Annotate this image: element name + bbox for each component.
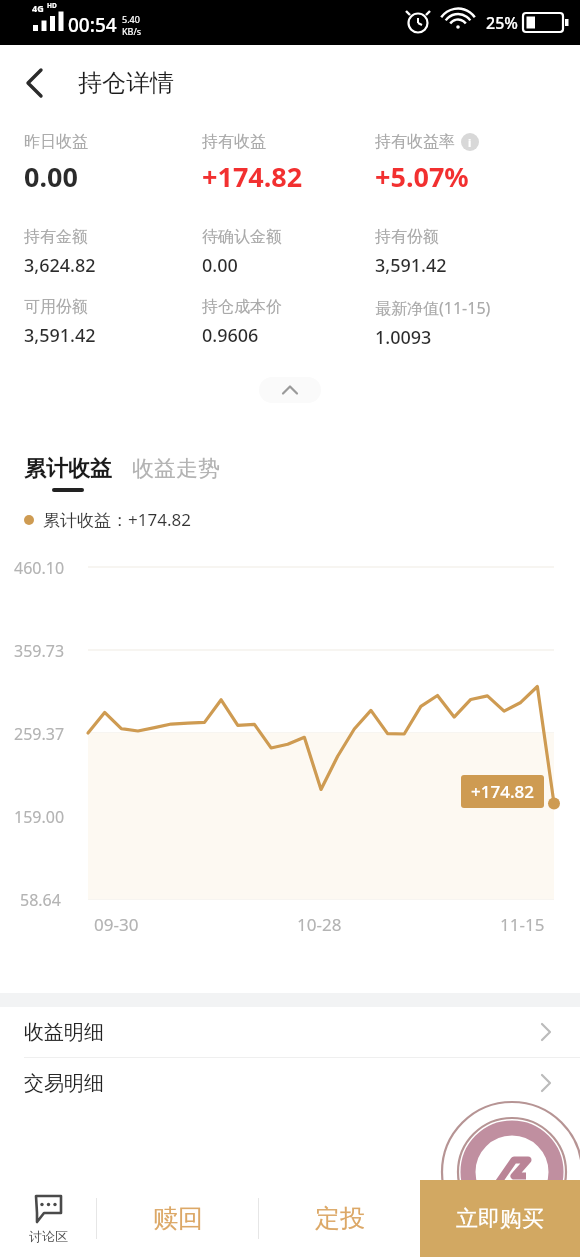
staticText: 0.00 [24,158,78,195]
staticText: 4G [32,2,44,14]
button[interactable]: Info [461,133,479,151]
staticText: +174.82 [471,780,534,803]
staticText: 持仓成本价 [202,297,282,317]
staticText: 10-28 [297,913,342,936]
staticText: 持有收益率 [375,132,455,152]
staticText: i [468,135,472,150]
staticText: 立即购买 [456,1205,544,1233]
staticText: 58.64 [20,889,61,911]
staticText: 持有金额 [24,227,88,247]
button[interactable]: 收益明细 [0,1007,580,1057]
staticText: 累计收益：+174.82 [43,508,191,531]
staticText: 11-15 [500,913,545,936]
staticText: 持有收益 [202,132,266,152]
button[interactable]: 定投 [259,1180,420,1257]
staticText: 持有份额 [375,227,439,247]
staticText: 3,591.42 [375,253,447,278]
staticText: 交易明细 [24,1071,104,1096]
button[interactable]: 讨论区 [0,1180,96,1257]
staticText: KB/s [122,25,142,37]
staticText: 赎回 [153,1203,203,1234]
staticText: HD [47,1,57,10]
staticText: 460.10 [14,557,65,579]
staticText: 25% [486,12,518,34]
staticText: +5.07% [375,158,469,195]
staticText: 5.40 [122,13,140,25]
button[interactable]: 收益走势 [132,455,220,483]
staticText: 3,624.82 [24,253,96,278]
button[interactable]: Back [8,57,60,109]
staticText: 最新净值(11-15) [375,297,491,319]
staticText: 待确认金额 [202,227,282,247]
staticText: 159.00 [14,806,65,828]
staticText: 持仓详情 [78,68,174,98]
staticText: 09-30 [94,913,139,936]
staticText: 259.37 [14,723,65,745]
staticText: 1.0093 [375,325,432,350]
staticText: 359.73 [14,640,65,662]
button[interactable]: Collapse [259,377,321,403]
button[interactable]: 累计收益 [24,455,112,492]
button[interactable]: 赎回 [97,1180,258,1257]
staticText: 昨日收益 [24,132,88,152]
staticText: +174.82 [202,158,303,195]
button[interactable]: 立即购买 [420,1180,580,1257]
button[interactable]: 交易明细 [0,1058,580,1108]
staticText: 0.00 [202,253,238,278]
staticText: 00:54 [68,12,117,38]
staticText: 收益明细 [24,1020,104,1045]
staticText: 累计收益 [24,455,112,483]
staticText: 定投 [315,1203,365,1234]
staticText: 讨论区 [29,1228,68,1244]
staticText: 可用份额 [24,297,88,317]
staticText: 0.9606 [202,323,259,348]
staticText: 3,591.42 [24,323,96,348]
